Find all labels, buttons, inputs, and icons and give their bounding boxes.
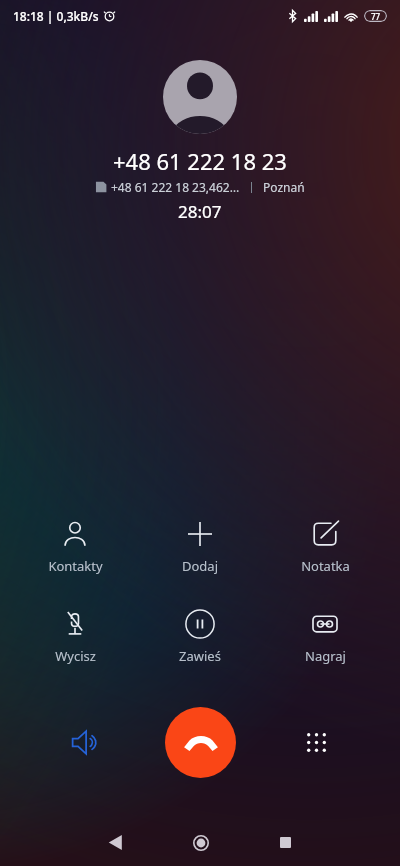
staticText: Poznań [263, 179, 305, 195]
button[interactable]: Wycisz [25, 604, 125, 670]
button[interactable]: Nagraj [275, 604, 375, 670]
staticText: Zawieś [179, 647, 221, 665]
staticText: Notatka [301, 557, 350, 575]
button[interactable]: Back [93, 820, 138, 865]
staticText: Dodaj [182, 557, 218, 575]
button[interactable]: Zawieś [150, 604, 250, 670]
staticText: +48 61 222 18 23 [113, 146, 287, 176]
button[interactable]: End call [165, 707, 236, 778]
staticText: +48 61 222 18 23,462… [111, 179, 240, 195]
staticText: Wycisz [55, 647, 96, 665]
button[interactable]: Recents [263, 820, 308, 865]
staticText: 77 [371, 11, 381, 22]
button[interactable]: Home [178, 820, 223, 865]
button[interactable]: Notatka [275, 514, 375, 580]
staticText: Nagraj [305, 647, 346, 665]
staticText: Kontakty [48, 557, 103, 575]
button[interactable]: Kontakty [25, 514, 125, 580]
button[interactable]: Speaker [59, 717, 109, 767]
staticText: 28:07 [178, 200, 222, 223]
button[interactable]: Dodaj [150, 514, 250, 580]
button[interactable]: Dialpad [291, 717, 341, 767]
staticText: 18:18 | 0,3kB/s [13, 8, 99, 24]
